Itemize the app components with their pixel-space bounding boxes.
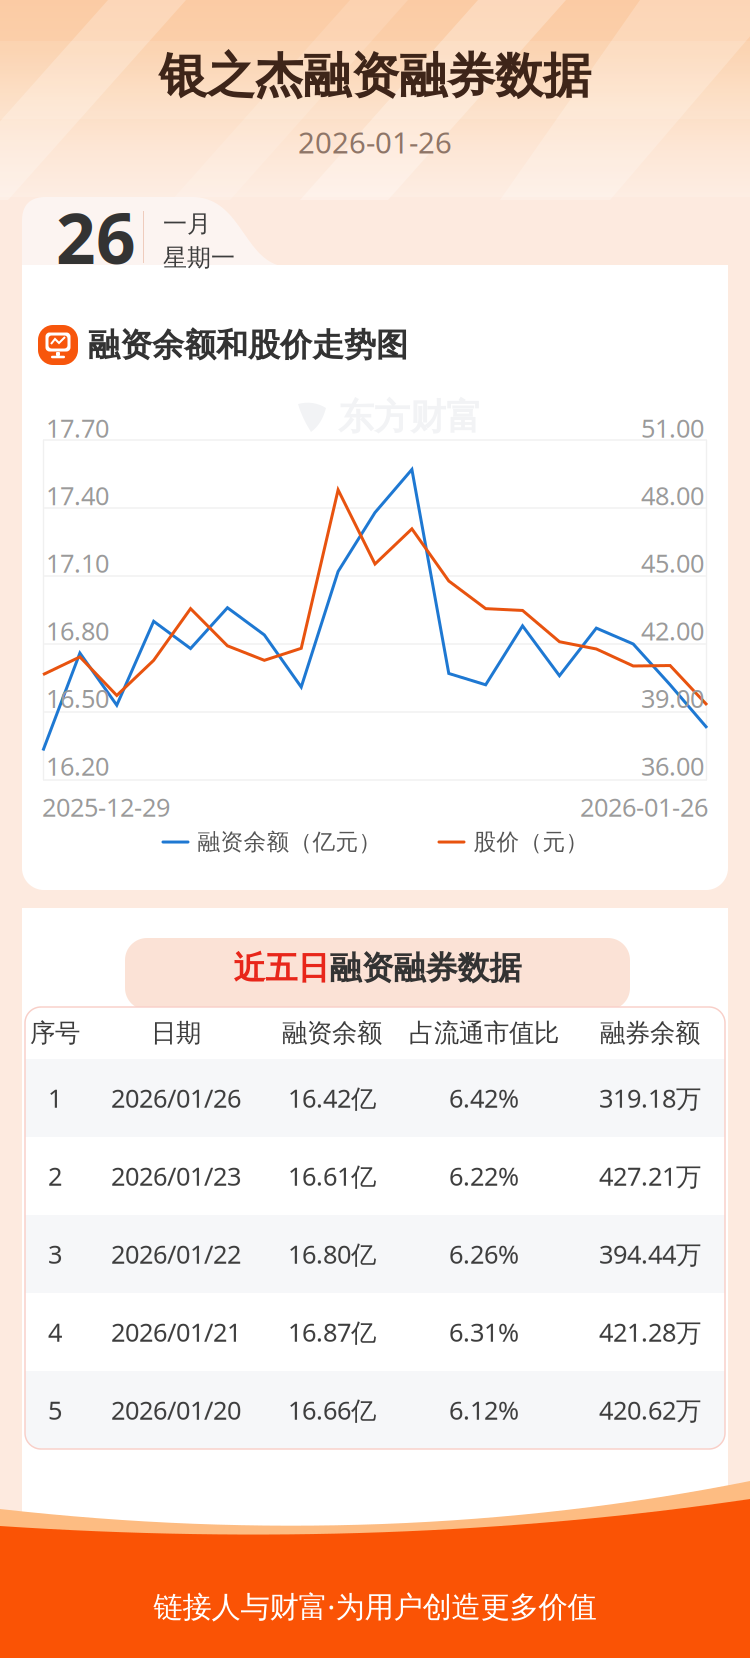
staticText: 16.80亿 [288,1237,376,1271]
staticText: 16.66亿 [288,1393,376,1427]
staticText: 6.42% [449,1081,519,1115]
staticText: 银之杰融资融券数据 [159,46,591,105]
staticText: 2026-01-26 [298,122,452,161]
staticText: 2025-12-29 [42,790,170,824]
staticText: 6.12% [449,1393,519,1427]
staticText: 融资余额和股价走势图 [88,325,408,365]
staticText: 链接人与财富·为用户创造更多价值 [153,1586,596,1625]
staticText: 42.00 [641,614,704,647]
staticText: 近五日 [233,948,329,988]
staticText: 16.61亿 [288,1159,376,1193]
staticText: 16.20 [46,749,109,783]
staticText: 16.42亿 [288,1081,376,1115]
staticText: 4 [48,1315,62,1349]
staticText: 2026-01-26 [580,790,708,824]
staticText: 17.10 [46,546,109,580]
staticText: 3 [48,1237,62,1271]
staticText: 17.40 [46,479,109,512]
staticText: 占流通市值比 [409,1017,559,1048]
staticText: 16.50 [46,681,109,715]
staticText: 融资余额 [282,1017,382,1048]
staticText: 6.31% [449,1315,519,1349]
staticText: 2026/01/26 [111,1081,241,1115]
staticText: 2026/01/20 [111,1393,241,1427]
staticText: 394.44万 [599,1237,701,1271]
staticText: 39.00 [641,681,704,715]
staticText: 6.26% [449,1237,519,1271]
staticText: 2026/01/23 [111,1159,241,1193]
staticText: 融资余额（亿元） [197,828,381,856]
staticText: 5 [48,1393,62,1427]
staticText: 序号 [30,1017,80,1048]
staticText: 421.28万 [599,1315,701,1349]
staticText: 319.18万 [599,1081,701,1115]
staticText: 45.00 [641,546,704,580]
staticText: 420.62万 [599,1393,701,1427]
staticText: 51.00 [641,411,704,445]
staticText: 6.22% [449,1159,519,1193]
staticText: 427.21万 [599,1159,701,1193]
staticText: 日期 [151,1017,201,1048]
staticText: 26 [56,191,136,283]
staticText: 17.70 [46,411,109,445]
staticText: 2026/01/22 [111,1237,241,1271]
staticText: 融券余额 [600,1017,700,1048]
staticText: 2 [48,1159,62,1193]
staticText: 1 [48,1081,62,1115]
staticText: 2026/01/21 [111,1315,241,1349]
staticText: 48.00 [641,479,704,512]
staticText: 一月 [163,209,211,238]
staticText: 股价（元） [473,828,588,856]
staticText: 东方财富 [338,395,482,439]
staticText: 36.00 [641,749,704,783]
staticText: 16.80 [46,614,109,647]
staticText: 16.87亿 [288,1315,376,1349]
staticText: 融资融券数据 [329,948,521,988]
staticText: 星期一 [163,243,235,272]
